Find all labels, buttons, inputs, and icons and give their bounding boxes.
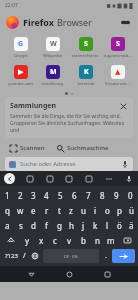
button[interactable]: Theme [63,173,74,184]
button[interactable]: . [101,249,111,263]
button[interactable]: Back [24,267,38,281]
button[interactable]: 7 [81,188,95,203]
button[interactable]: w [14,203,27,218]
button[interactable]: W [37,35,68,60]
staticText: Google [14,53,28,58]
button[interactable]: z [65,203,77,218]
button[interactable]: ö [113,218,125,233]
staticText: Sammlungen [10,101,57,111]
staticText: 0 [128,190,133,201]
button[interactable]: n [90,233,104,248]
button[interactable]: f [40,218,53,233]
button[interactable]: ä [125,218,137,233]
button[interactable]: b [76,233,90,248]
button[interactable]: / [20,249,29,263]
staticText: k [93,220,98,231]
staticText: Einsatz von… [105,81,130,86]
button[interactable]: j [77,218,89,233]
button[interactable]: More options [103,173,114,184]
staticText: Suchmaschine [67,144,109,152]
button[interactable]: S [102,35,133,60]
button[interactable]: Sammlungen [5,97,133,138]
button[interactable]: Enter [112,249,135,263]
staticText: ▲ [115,68,121,76]
staticText: kritzer.de [77,81,95,86]
button[interactable]: r [40,203,53,218]
button[interactable]: o [101,203,113,218]
button[interactable]: Suchmaschine [55,142,111,154]
staticText: j [82,220,85,231]
button[interactable]: ?123 [3,249,20,263]
button[interactable]: 2 [14,188,27,203]
button[interactable]: Close [119,102,128,111]
button[interactable]: Menu [118,15,132,29]
button[interactable]: Scannen [8,142,47,154]
staticText: ä [129,220,134,231]
button[interactable]: s [14,218,27,233]
staticText: r [45,205,49,216]
button[interactable]: l [101,218,113,233]
button[interactable]: 4 [40,188,53,203]
button[interactable]: t [53,203,65,218]
button[interactable]: v [62,233,76,248]
staticText: u [81,205,86,216]
staticText: h [69,220,74,231]
button[interactable]: Collapse toolbar [4,173,15,184]
staticText: G [18,39,24,49]
button[interactable]: Backspace [118,233,137,248]
staticText: ö [117,220,122,231]
staticText: Sammeln Sie die Dinge, die für Sie wicht… [10,113,128,134]
button[interactable]: 5 [53,188,67,203]
staticText: q [5,205,10,216]
button[interactable]: y [20,233,34,248]
button[interactable]: a [1,218,14,233]
button[interactable]: p [113,203,125,218]
staticText: Suche oder Adresse [20,160,76,168]
button[interactable]: Home [62,267,76,281]
button[interactable]: Settings [44,173,55,184]
button[interactable]: q [1,203,14,218]
staticText: g [57,220,62,231]
button[interactable]: g [53,218,65,233]
button[interactable]: M [37,63,68,88]
button[interactable]: Shift [1,233,20,248]
button[interactable]: u [77,203,89,218]
staticText: mozilla.org [42,81,63,86]
button[interactable]: m [104,233,118,248]
button[interactable]: Firefox logo [6,16,19,29]
button[interactable]: Clipboard [24,173,35,184]
button[interactable]: ▲ [102,63,133,88]
staticText: d [31,220,36,231]
button[interactable]: c [48,233,62,248]
staticText: e [31,205,36,216]
button[interactable]: ▶ [5,63,36,88]
button[interactable]: k [89,218,101,233]
button[interactable]: 8 [95,188,109,203]
button[interactable]: 1 [1,188,14,203]
button[interactable]: 0 [123,188,137,203]
staticText: t [58,205,61,216]
button[interactable]: G [5,35,36,60]
staticText: . [105,251,107,261]
button[interactable]: 3 [27,188,40,203]
button[interactable]: Voice search [120,160,129,169]
staticText: K [84,67,89,77]
staticText: x [39,235,44,246]
button[interactable]: e [27,203,40,218]
button[interactable]: i [89,203,101,218]
button[interactable]: 9 [109,188,123,203]
button[interactable]: K [70,63,101,88]
button[interactable]: x [34,233,48,248]
button[interactable]: h [65,218,77,233]
button[interactable]: 6 [67,188,81,203]
button[interactable]: Recent apps [100,267,114,281]
button[interactable]: S [70,35,101,60]
button[interactable]: Suche oder Adresse [5,157,133,171]
button[interactable]: Voice input [123,173,134,184]
button[interactable]: DE · EN [43,249,99,263]
button[interactable]: Translate [83,173,94,184]
staticText: v [67,235,72,246]
button[interactable]: ü [125,203,137,218]
button[interactable]: d [27,218,40,233]
button[interactable]: Change language [29,249,41,263]
